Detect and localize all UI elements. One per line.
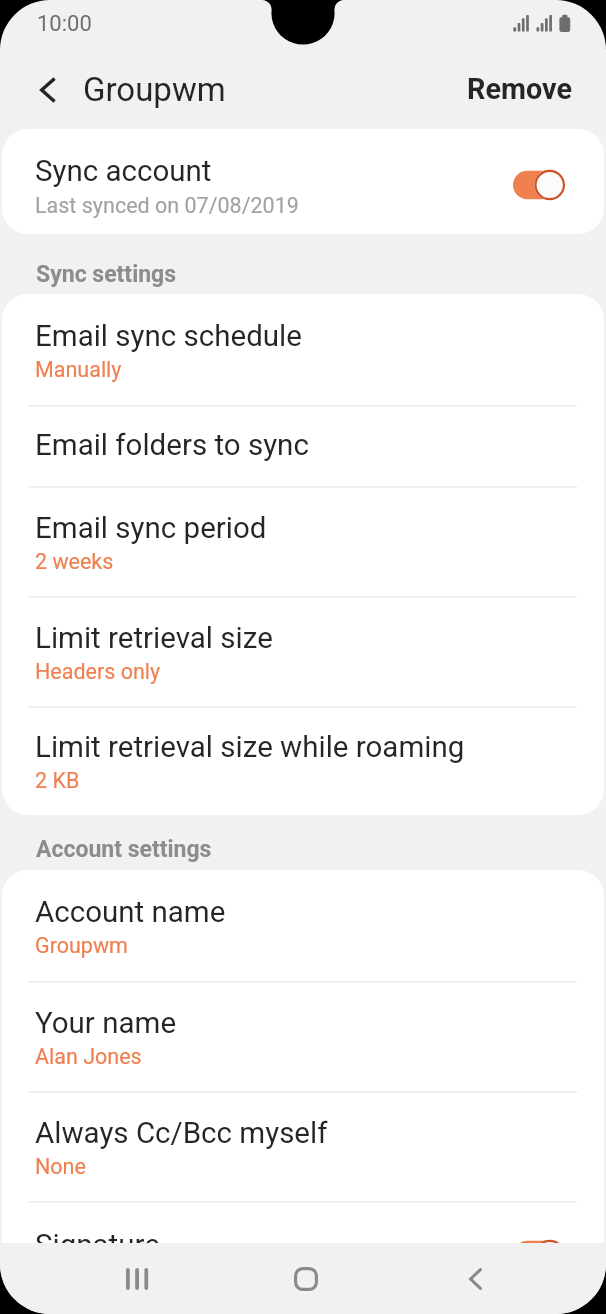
button[interactable]: Email sync schedule bbox=[2, 294, 604, 405]
staticText: Always Cc/Bcc myself bbox=[35, 1116, 328, 1151]
button[interactable]: Limit retrieval size bbox=[2, 596, 604, 706]
staticText: Limit retrieval size while roaming bbox=[35, 730, 465, 765]
staticText: Email sync schedule bbox=[35, 319, 302, 354]
button[interactable]: Always Cc/Bcc myself bbox=[2, 1091, 604, 1201]
staticText: Account name bbox=[35, 895, 226, 930]
button[interactable]: Home bbox=[270, 1243, 341, 1314]
staticText: Last synced on 07/08/2019 bbox=[35, 193, 299, 218]
button[interactable]: Account name bbox=[2, 870, 604, 981]
staticText: Email folders to sync bbox=[35, 428, 309, 463]
staticText: Groupwm bbox=[35, 933, 128, 958]
staticText: Groupwm bbox=[83, 70, 226, 109]
staticText: Headers only bbox=[35, 659, 161, 684]
staticText: Alan Jones bbox=[35, 1044, 142, 1069]
staticText: Account settings bbox=[36, 836, 212, 863]
staticText: Email sync period bbox=[35, 511, 267, 546]
staticText: Your name bbox=[35, 1006, 177, 1041]
button[interactable]: Back bbox=[440, 1243, 511, 1314]
button[interactable]: Navigate up bbox=[0, 58, 66, 124]
button[interactable]: Sync account bbox=[2, 129, 604, 234]
staticText: Signature bbox=[35, 1228, 160, 1243]
button[interactable]: Signature bbox=[2, 1201, 604, 1243]
staticText: Sync settings bbox=[36, 261, 177, 288]
button[interactable]: Your name bbox=[2, 981, 604, 1091]
button[interactable]: Toggle bbox=[513, 1239, 565, 1243]
staticText: 2 weeks bbox=[35, 549, 114, 574]
staticText: 2 KB bbox=[35, 768, 80, 793]
button[interactable]: Recent apps bbox=[101, 1243, 172, 1314]
button[interactable]: Toggle bbox=[513, 169, 565, 201]
button[interactable]: Email folders to sync bbox=[2, 405, 604, 486]
staticText: Manually bbox=[35, 357, 122, 382]
staticText: Limit retrieval size bbox=[35, 621, 273, 656]
staticText: None bbox=[35, 1154, 86, 1179]
button[interactable]: Email sync period bbox=[2, 486, 604, 596]
button[interactable]: Remove bbox=[434, 62, 606, 120]
button[interactable]: Limit retrieval size while roaming bbox=[2, 706, 604, 815]
staticText: Sync account bbox=[35, 154, 212, 189]
staticText: 10:00 bbox=[37, 11, 92, 37]
staticText: Remove bbox=[467, 72, 572, 106]
